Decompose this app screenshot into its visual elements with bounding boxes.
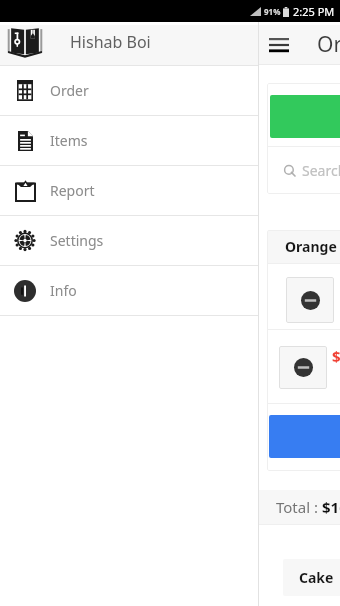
staticText: Report — [50, 181, 95, 200]
staticText: Settings — [50, 231, 104, 250]
button[interactable]: Settings — [0, 216, 258, 265]
button[interactable]: Open navigation drawer — [259, 25, 299, 64]
staticText: 2:25 PM — [293, 4, 335, 19]
button[interactable]: CONFIRM ORDER — [269, 415, 340, 458]
staticText: Orange | 2 pcs — [285, 237, 340, 256]
button[interactable]: Search... — [267, 147, 340, 194]
button[interactable]: Info — [0, 266, 258, 315]
staticText: Items — [50, 131, 88, 150]
button[interactable]: Decrease quantity — [286, 277, 334, 323]
button[interactable]: Order — [0, 66, 258, 115]
staticText: Search... — [302, 161, 340, 180]
button[interactable]: Decrease quantity — [279, 346, 327, 389]
staticText: Total : — [276, 497, 322, 517]
button[interactable]: Report — [0, 166, 258, 215]
staticText: Order — [50, 81, 89, 100]
button[interactable]: Hishab Boi — [0, 25, 258, 65]
button[interactable]: ADD ITEM — [270, 95, 340, 138]
staticText: 91% — [264, 6, 281, 17]
staticText: Info — [50, 281, 77, 300]
staticText: Cake | 3 pcs — [299, 568, 340, 587]
staticText: $80 — [332, 346, 340, 366]
button[interactable]: Items — [0, 116, 258, 165]
button[interactable]: Cake | 3 pcs — [283, 559, 340, 596]
staticText: $160 — [322, 497, 340, 517]
staticText: Order — [317, 30, 340, 59]
staticText: Hishab Boi — [70, 31, 151, 53]
